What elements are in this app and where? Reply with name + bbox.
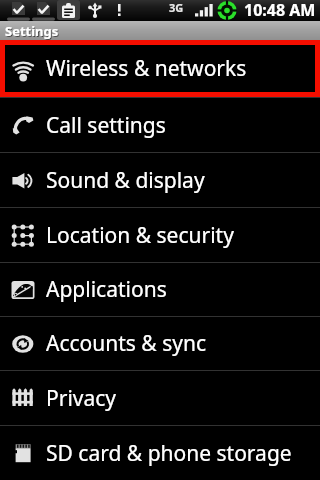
button[interactable]: Location & security	[0, 208, 320, 262]
staticText: SD card & phone storage	[46, 439, 292, 468]
staticText: Privacy	[46, 384, 117, 413]
button[interactable]: Wireless & networks	[5, 45, 315, 92]
staticText: Applications	[46, 275, 167, 304]
staticText: Settings	[5, 22, 59, 40]
button[interactable]: Accounts & sync	[0, 317, 320, 370]
button[interactable]: Call settings	[0, 98, 320, 152]
staticText: Location & security	[46, 221, 234, 250]
staticText: Call settings	[46, 111, 166, 140]
button[interactable]: SD card & phone storage	[0, 426, 320, 480]
staticText: Wireless & networks	[46, 54, 247, 83]
button[interactable]: Applications	[0, 263, 320, 316]
staticText: Accounts & sync	[46, 329, 206, 358]
button[interactable]: Sound & display	[0, 153, 320, 207]
button[interactable]: Privacy	[0, 371, 320, 425]
staticText: 10:48 AM	[244, 0, 316, 20]
staticText: 3G	[169, 0, 184, 15]
staticText: Settings	[6, 23, 60, 41]
staticText: Sound & display	[46, 166, 205, 195]
